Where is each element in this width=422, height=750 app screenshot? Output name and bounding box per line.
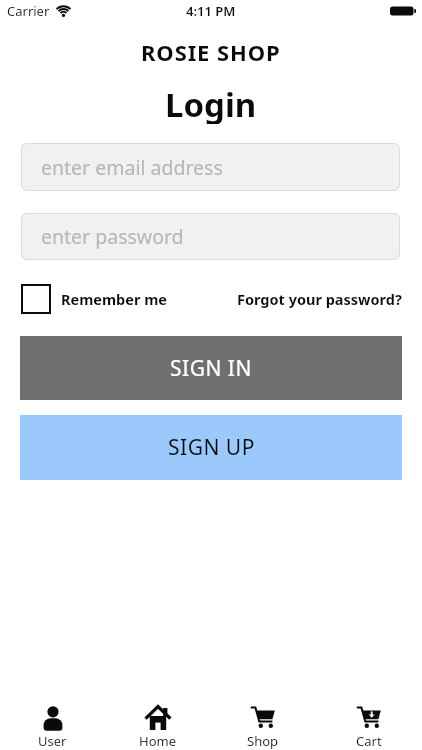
button[interactable]: SIGN UP [20,415,402,480]
staticText: User [38,732,67,750]
button[interactable]: User [0,702,105,750]
button[interactable]: Shop [210,702,316,750]
button[interactable]: enter password [21,213,400,260]
staticText: Cart [356,732,382,750]
button[interactable]: Forgot your password? [237,289,402,309]
staticText: enter password [41,223,184,250]
button[interactable] [21,284,51,314]
staticText: Shop [247,732,279,750]
staticText: 4:11 PM [186,2,236,20]
staticText: enter email address [41,154,223,181]
staticText: SIGN UP [168,433,255,462]
staticText: SIGN IN [170,354,252,383]
button[interactable]: Cart [316,702,422,750]
staticText: Home [139,732,176,750]
button[interactable]: SIGN IN [20,336,402,400]
button[interactable]: enter email address [21,143,400,191]
staticText: Login [165,82,257,124]
button[interactable]: Home [105,702,210,750]
staticText: Carrier [7,2,50,20]
staticText: ROSIE SHOP [141,37,281,67]
staticText: Remember me [61,289,167,309]
